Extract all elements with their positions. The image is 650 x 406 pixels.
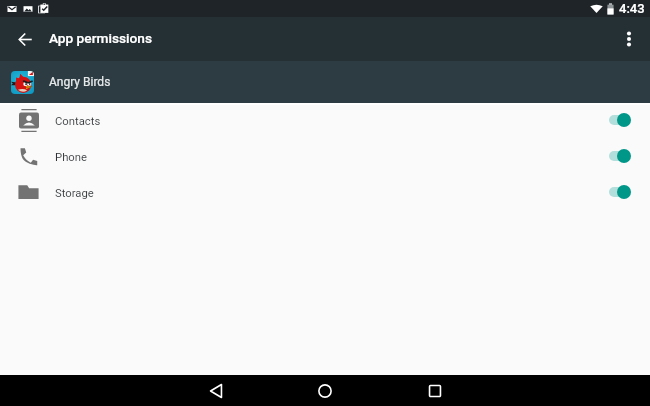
staticText: Contacts [55,115,101,128]
button[interactable]: Phone [0,138,650,174]
button[interactable]: Phone permission, on [609,145,631,167]
button[interactable]: Back [203,378,229,404]
button[interactable]: Contacts permission, on [609,109,631,131]
button[interactable]: Recent apps [422,378,448,404]
button[interactable]: Navigate up [11,25,39,53]
button[interactable]: More options [615,25,643,53]
button[interactable]: Storage permission, on [609,181,631,203]
button[interactable]: Storage [0,174,650,210]
staticText: App permissions [49,30,153,46]
button[interactable]: Contacts [0,102,650,138]
staticText: Phone [55,151,88,164]
staticText: Angry Birds [49,75,111,89]
button[interactable]: Angry Birds [0,61,650,103]
staticText: Storage [55,187,94,200]
staticText: 4:43 [619,1,645,16]
button[interactable]: Home [312,378,338,404]
